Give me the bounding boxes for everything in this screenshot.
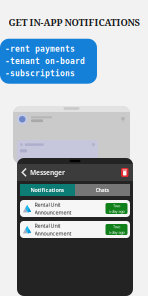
staticText: Chats (95, 186, 109, 194)
button[interactable]: Delete (121, 168, 133, 177)
staticText: Announcement (34, 230, 71, 237)
staticText: Two (113, 224, 120, 229)
staticText: Rental Unit (34, 222, 60, 229)
staticText: Announcement (34, 209, 71, 216)
staticText: -tenant on-board (5, 57, 85, 66)
staticText: GET IN-APP NOTIFICATIONS (8, 16, 139, 29)
staticText: Notifications (30, 186, 64, 194)
button[interactable]: Notifications (20, 184, 75, 196)
staticText: Rental Unit (34, 201, 60, 208)
button[interactable]: Rental Unit (20, 221, 130, 238)
staticText: -subscriptions (5, 69, 75, 78)
button[interactable]: Back (17, 164, 30, 181)
staticText: Messenger (30, 168, 65, 177)
button[interactable]: Chats (75, 184, 130, 196)
button[interactable]: Rental Unit (20, 200, 130, 217)
staticText: -rent payments (5, 44, 75, 53)
staticText: a day ago (108, 208, 124, 214)
staticText: Two (113, 203, 120, 208)
staticText: a day ago (108, 229, 124, 235)
